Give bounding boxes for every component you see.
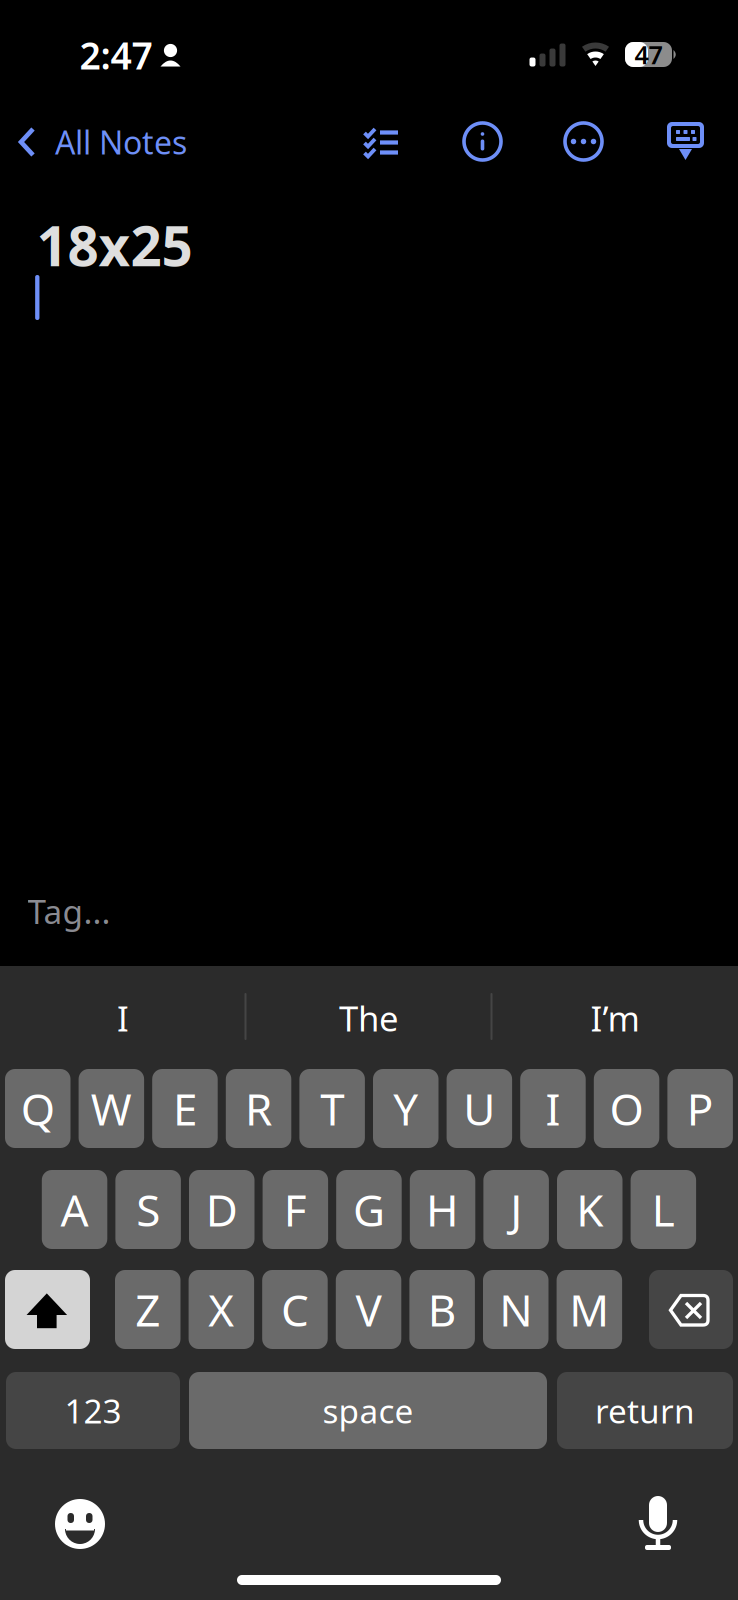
staticText: A [60, 1180, 88, 1239]
staticText: return [595, 1388, 695, 1433]
staticText: 47 [634, 38, 662, 71]
button[interactable]: P [667, 1069, 733, 1148]
button[interactable]: Hide Keyboard [658, 114, 712, 168]
staticText: U [463, 1079, 495, 1138]
button[interactable]: Delete [649, 1270, 733, 1349]
staticText: L [652, 1180, 675, 1239]
button[interactable]: C [262, 1270, 328, 1349]
button[interactable]: Q [5, 1069, 70, 1148]
button[interactable]: All Notes [0, 109, 190, 175]
button[interactable]: V [336, 1270, 401, 1349]
button[interactable]: M [557, 1270, 622, 1349]
staticText: All Notes [55, 121, 187, 163]
button[interactable]: Y [373, 1069, 438, 1148]
button[interactable]: The [249, 978, 489, 1058]
staticText: P [687, 1079, 714, 1138]
button[interactable]: K [557, 1170, 622, 1249]
button[interactable]: B [409, 1270, 475, 1349]
button[interactable]: More options [556, 114, 610, 168]
button[interactable]: I’m [495, 978, 735, 1058]
button[interactable]: I [520, 1069, 586, 1148]
staticText: 123 [64, 1388, 121, 1433]
button[interactable]: U [447, 1069, 512, 1148]
staticText: S [136, 1180, 160, 1239]
button[interactable]: Z [115, 1270, 180, 1349]
staticText: I’m [590, 995, 639, 1041]
staticText: Z [135, 1280, 160, 1339]
staticText: M [569, 1280, 609, 1339]
staticText: R [245, 1079, 272, 1138]
button[interactable]: D [189, 1170, 254, 1249]
button[interactable]: H [410, 1170, 475, 1249]
button[interactable]: Info [455, 114, 509, 168]
staticText: space [322, 1388, 413, 1433]
button[interactable]: Dictate [634, 1493, 682, 1551]
button[interactable]: S [115, 1170, 181, 1249]
staticText: C [281, 1280, 309, 1339]
staticText: Y [393, 1079, 418, 1138]
staticText: I [545, 1079, 560, 1138]
button[interactable]: R [226, 1069, 291, 1148]
button[interactable]: N [483, 1270, 548, 1349]
button[interactable]: Emoji [55, 1499, 105, 1549]
staticText: 2:47 [79, 30, 152, 80]
staticText: F [284, 1180, 307, 1239]
button[interactable]: A [42, 1170, 107, 1249]
staticText: B [428, 1280, 457, 1339]
staticText: K [576, 1180, 603, 1239]
staticText: J [510, 1180, 522, 1239]
button[interactable]: Checklist [354, 114, 408, 168]
staticText: Q [21, 1079, 55, 1138]
button[interactable]: F [263, 1170, 328, 1249]
staticText: E [173, 1079, 197, 1138]
staticText: T [320, 1079, 344, 1138]
button[interactable]: I [3, 978, 243, 1058]
staticText: X [208, 1280, 234, 1339]
staticText: N [499, 1280, 532, 1339]
button[interactable]: T [299, 1069, 365, 1148]
button[interactable]: J [483, 1170, 549, 1249]
button[interactable]: E [152, 1069, 218, 1148]
staticText: I [117, 995, 129, 1041]
button[interactable]: W [79, 1069, 144, 1148]
staticText: Tag... [27, 889, 110, 933]
button[interactable]: G [336, 1170, 402, 1249]
staticText: 18x25 [36, 209, 192, 281]
button[interactable]: 123 [6, 1372, 180, 1449]
button[interactable]: X [189, 1270, 254, 1349]
staticText: O [609, 1079, 643, 1138]
staticText: G [353, 1180, 385, 1239]
staticText: W [91, 1079, 132, 1138]
staticText: V [355, 1280, 381, 1339]
staticText: D [206, 1180, 238, 1239]
staticText: The [339, 995, 399, 1041]
button[interactable]: Shift [5, 1270, 90, 1349]
button[interactable]: O [594, 1069, 659, 1148]
button[interactable]: return [557, 1372, 733, 1449]
staticText: H [426, 1180, 459, 1239]
button[interactable]: space [189, 1372, 547, 1449]
button[interactable]: L [631, 1170, 696, 1249]
